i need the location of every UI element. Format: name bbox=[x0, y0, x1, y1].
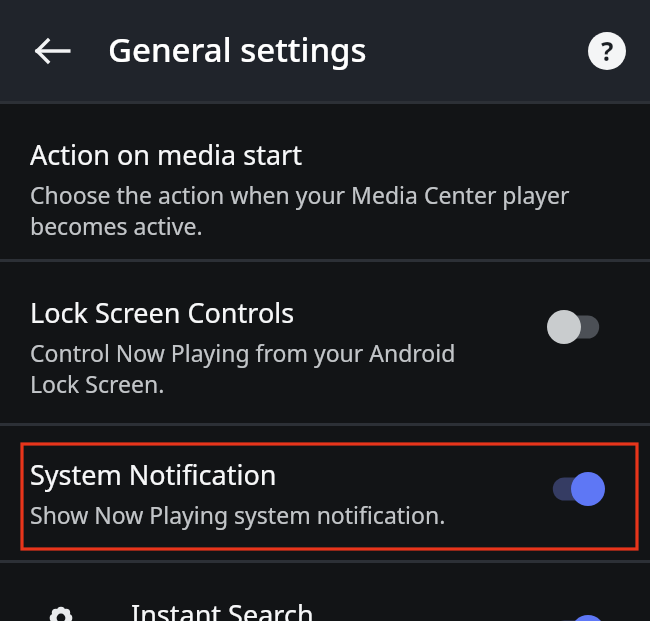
staticText: Action on media start bbox=[30, 136, 302, 173]
button[interactable]: Back bbox=[22, 20, 84, 82]
staticText: System Notification bbox=[30, 456, 277, 493]
button[interactable]: Help bbox=[580, 24, 634, 78]
button[interactable]: Toggle off bbox=[547, 310, 605, 344]
other: Instant Search icon bbox=[50, 607, 72, 621]
staticText: Show Now Playing system notification. bbox=[30, 499, 446, 530]
staticText: Instant Search bbox=[131, 596, 314, 621]
staticText: Choose the action when your Media Center… bbox=[30, 179, 570, 242]
button[interactable]: Instant Search icon bbox=[0, 563, 650, 621]
staticText: General settings bbox=[108, 27, 367, 72]
staticText: Lock Screen Controls bbox=[30, 294, 295, 331]
button[interactable]: Action on media start bbox=[0, 104, 650, 259]
staticText: Control Now Playing from your Android Lo… bbox=[30, 337, 456, 400]
button[interactable]: Toggle on bbox=[547, 472, 605, 506]
staticText: ? bbox=[601, 33, 614, 68]
button[interactable]: System Notification bbox=[0, 426, 650, 560]
button[interactable]: Lock Screen Controls bbox=[0, 262, 650, 423]
